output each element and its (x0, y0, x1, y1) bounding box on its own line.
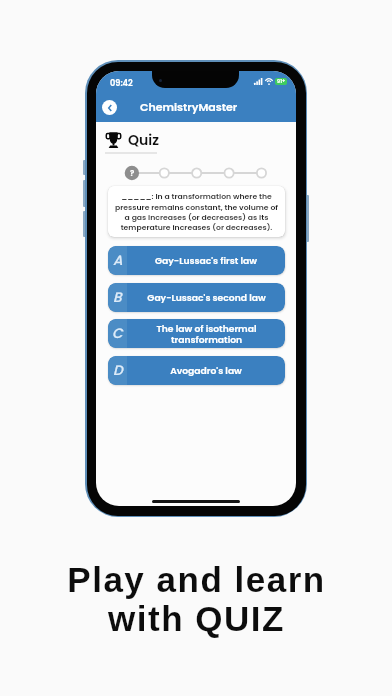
staticText: Gay-Lussac's second law (147, 291, 266, 304)
staticText: 09:42 (110, 77, 133, 88)
button[interactable]: Back (102, 100, 117, 115)
staticText: Gay-Lussac's first law (155, 254, 257, 267)
staticText: 91+ (277, 78, 286, 85)
staticText: Avogadro's law (170, 364, 242, 377)
button[interactable]: B (108, 283, 285, 312)
staticText: ChemistryMaster (140, 99, 238, 114)
staticText: Play and learn (67, 560, 326, 599)
staticText: The law of isothermal transformation (156, 322, 257, 346)
staticText: with QUIZ (108, 599, 285, 638)
staticText: D (113, 361, 123, 380)
staticText: Quiz (128, 130, 159, 150)
button[interactable]: D (108, 356, 285, 385)
button[interactable]: A (108, 246, 285, 275)
staticText: ? (130, 168, 135, 179)
staticText: A (113, 251, 123, 270)
staticText: B (113, 288, 122, 307)
button[interactable]: C (108, 319, 285, 348)
staticText: C (112, 324, 123, 343)
staticText: _____: In a transformation where the pre… (114, 191, 279, 232)
